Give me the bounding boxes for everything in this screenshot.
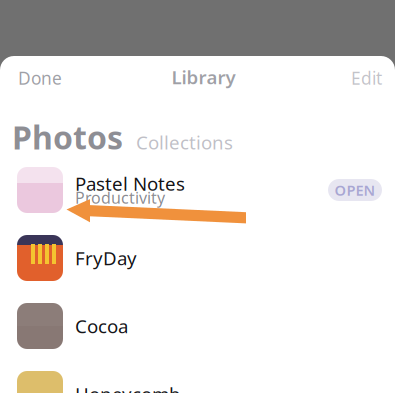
staticText: Pastel Notes [75,171,185,196]
button[interactable]: FryDay [0,224,395,292]
staticText: Photos [12,116,123,158]
staticText: Done [18,66,62,89]
staticText: Productivity [75,187,165,208]
staticText: Edit [351,66,382,89]
staticText: Cocoa [75,314,128,338]
button[interactable]: Pastel Notes [0,156,395,224]
staticText: FryDay [75,246,137,270]
button[interactable]: Honeycomb [0,360,395,393]
button[interactable]: Cocoa [0,292,395,360]
staticText: Honeycomb [75,382,180,393]
staticText: Collections [136,130,233,155]
staticText: Library [171,65,235,89]
staticText: OPEN [334,180,375,200]
